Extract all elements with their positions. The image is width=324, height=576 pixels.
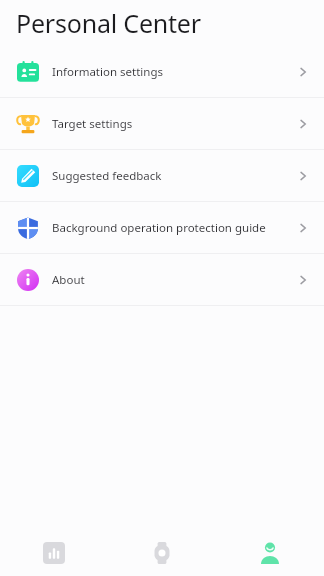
button[interactable]: Statistics	[0, 530, 108, 576]
staticText: Background operation protection guide	[52, 220, 290, 236]
button[interactable]: Information settings	[0, 46, 324, 97]
staticText: Target settings	[52, 116, 290, 132]
staticText: Information settings	[52, 64, 290, 80]
button[interactable]: Suggested feedback	[0, 150, 324, 201]
staticText: About	[52, 272, 290, 288]
button[interactable]: Target settings	[0, 98, 324, 149]
staticText: Personal Center	[16, 6, 201, 40]
button[interactable]: About	[0, 254, 324, 305]
button[interactable]: Profile	[216, 530, 324, 576]
button[interactable]: Device	[108, 530, 216, 576]
button[interactable]: Background operation protection guide	[0, 202, 324, 253]
staticText: Suggested feedback	[52, 168, 290, 184]
